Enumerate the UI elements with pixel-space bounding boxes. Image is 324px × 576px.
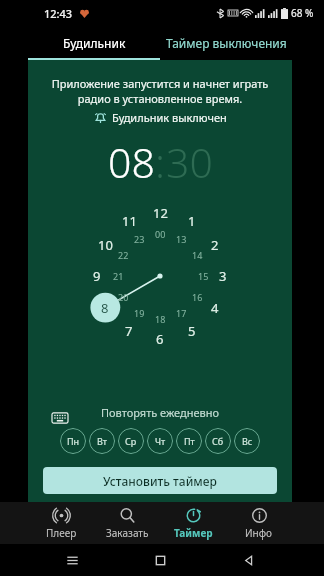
button[interactable]: Пн	[60, 428, 86, 454]
staticText: 9	[93, 267, 101, 285]
button[interactable]: 9	[85, 265, 109, 287]
button[interactable]: 8	[93, 297, 117, 319]
button[interactable]: 11	[117, 210, 141, 232]
staticText: 08	[108, 134, 155, 190]
staticText: Установить таймер	[103, 473, 217, 489]
button[interactable]: Плеер	[28, 502, 94, 544]
staticText: 7	[125, 322, 133, 340]
staticText: Сб	[212, 435, 224, 447]
button[interactable]: Keyboard input	[50, 408, 70, 428]
staticText: 3	[219, 267, 227, 285]
button[interactable]: Будильник	[28, 26, 160, 60]
button[interactable]: Ср	[118, 428, 144, 454]
staticText: Повторять ежедневно	[101, 405, 220, 420]
button[interactable]: Инфо	[226, 502, 292, 544]
staticText: 5	[188, 322, 196, 340]
staticText: 22	[118, 249, 129, 261]
staticText: 15	[198, 270, 209, 282]
button[interactable]: Таймер	[160, 502, 226, 544]
button[interactable]: Home	[116, 544, 204, 576]
button[interactable]: 30	[166, 134, 213, 190]
staticText: 21	[113, 270, 124, 282]
button[interactable]: Вс	[234, 428, 260, 454]
staticText: Ср	[125, 435, 137, 447]
staticText: Вс	[242, 435, 253, 447]
staticText: Таймер выключения	[166, 35, 287, 51]
button[interactable]: 7	[117, 320, 141, 342]
button[interactable]: Будильник выключен	[28, 110, 292, 125]
button[interactable]: Пт	[176, 428, 202, 454]
staticText: 23	[134, 233, 145, 245]
button[interactable]: Заказать	[94, 502, 160, 544]
staticText: 30	[166, 134, 213, 190]
staticText: Приложение запустится и начнет играть ра…	[34, 76, 286, 106]
button[interactable]: 18	[149, 310, 171, 328]
staticText: Таймер	[174, 526, 213, 540]
staticText: 18	[155, 313, 166, 325]
staticText: 13	[176, 233, 187, 245]
button[interactable]: 00	[149, 225, 171, 243]
staticText: Пн	[67, 435, 80, 447]
button[interactable]: 21	[107, 267, 129, 285]
staticText: 1	[188, 212, 196, 230]
staticText: 6	[156, 330, 164, 348]
staticText: 68 %	[291, 6, 314, 20]
button[interactable]: 17	[170, 304, 192, 322]
staticText: 14	[192, 249, 203, 261]
button[interactable]: 14	[186, 246, 208, 264]
staticText: 19	[134, 307, 145, 319]
staticText: Чт	[155, 435, 166, 447]
button[interactable]: Таймер выключения	[160, 26, 292, 60]
staticText: Будильник выключен	[112, 110, 227, 125]
staticText: Инфо	[245, 526, 273, 540]
staticText: Вт	[97, 435, 108, 447]
button[interactable]: 5	[180, 320, 204, 342]
button[interactable]: 6	[148, 328, 172, 350]
staticText: 10	[98, 236, 113, 254]
button[interactable]: 23	[128, 230, 150, 248]
button[interactable]: Back	[204, 544, 292, 576]
button[interactable]: 15	[192, 267, 214, 285]
staticText: :	[155, 134, 166, 190]
staticText: 4	[211, 299, 219, 317]
button[interactable]: Установить таймер	[43, 467, 277, 494]
button[interactable]: 19	[128, 304, 150, 322]
button[interactable]: 22	[112, 246, 134, 264]
button[interactable]: 1	[180, 210, 204, 232]
button[interactable]: Вт	[89, 428, 115, 454]
button[interactable]: 20	[112, 288, 134, 306]
staticText: 16	[192, 291, 203, 303]
button[interactable]: 13	[170, 230, 192, 248]
button[interactable]: Чт	[147, 428, 173, 454]
button[interactable]: 16	[186, 288, 208, 306]
button[interactable]: 10	[93, 234, 117, 256]
button[interactable]: 12	[148, 202, 172, 224]
button[interactable]: 4	[203, 297, 227, 319]
staticText: 12:43	[44, 6, 73, 21]
staticText: Пт	[184, 435, 195, 447]
button[interactable]: 2	[203, 234, 227, 256]
staticText: 17	[176, 307, 187, 319]
staticText: 2	[211, 236, 219, 254]
staticText: 11	[122, 212, 137, 230]
button[interactable]: 08	[108, 134, 155, 190]
button[interactable]: Сб	[205, 428, 231, 454]
button[interactable]: 3	[211, 265, 235, 287]
staticText: Заказать	[106, 526, 149, 540]
staticText: 00	[155, 228, 166, 240]
staticText: 12	[153, 204, 168, 222]
staticText: 20	[118, 291, 129, 303]
staticText: Будильник	[63, 35, 126, 51]
staticText: 8	[101, 299, 109, 317]
staticText: Плеер	[46, 526, 77, 540]
button[interactable]: Recent apps	[28, 544, 116, 576]
